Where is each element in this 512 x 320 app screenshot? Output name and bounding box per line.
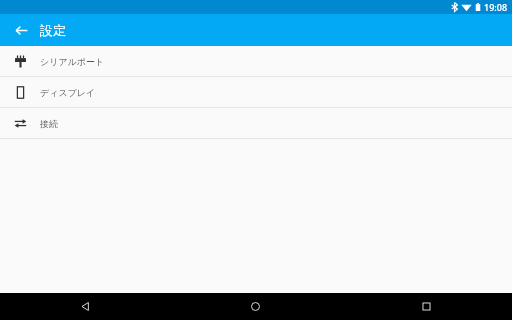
staticText: 接続 — [40, 118, 58, 129]
button[interactable]: シリアルポート — [0, 46, 512, 76]
button[interactable]: Home — [170, 293, 341, 320]
button[interactable]: 接続 — [0, 108, 512, 138]
staticText: シリアルポート — [40, 56, 105, 67]
button[interactable]: Back — [9, 18, 33, 42]
button[interactable]: Recent apps — [341, 293, 512, 320]
staticText: 19:08 — [484, 1, 508, 13]
button[interactable]: ディスプレイ — [0, 77, 512, 107]
button[interactable]: Back — [0, 293, 170, 320]
staticText: 設定 — [40, 22, 66, 38]
staticText: ディスプレイ — [40, 87, 96, 98]
